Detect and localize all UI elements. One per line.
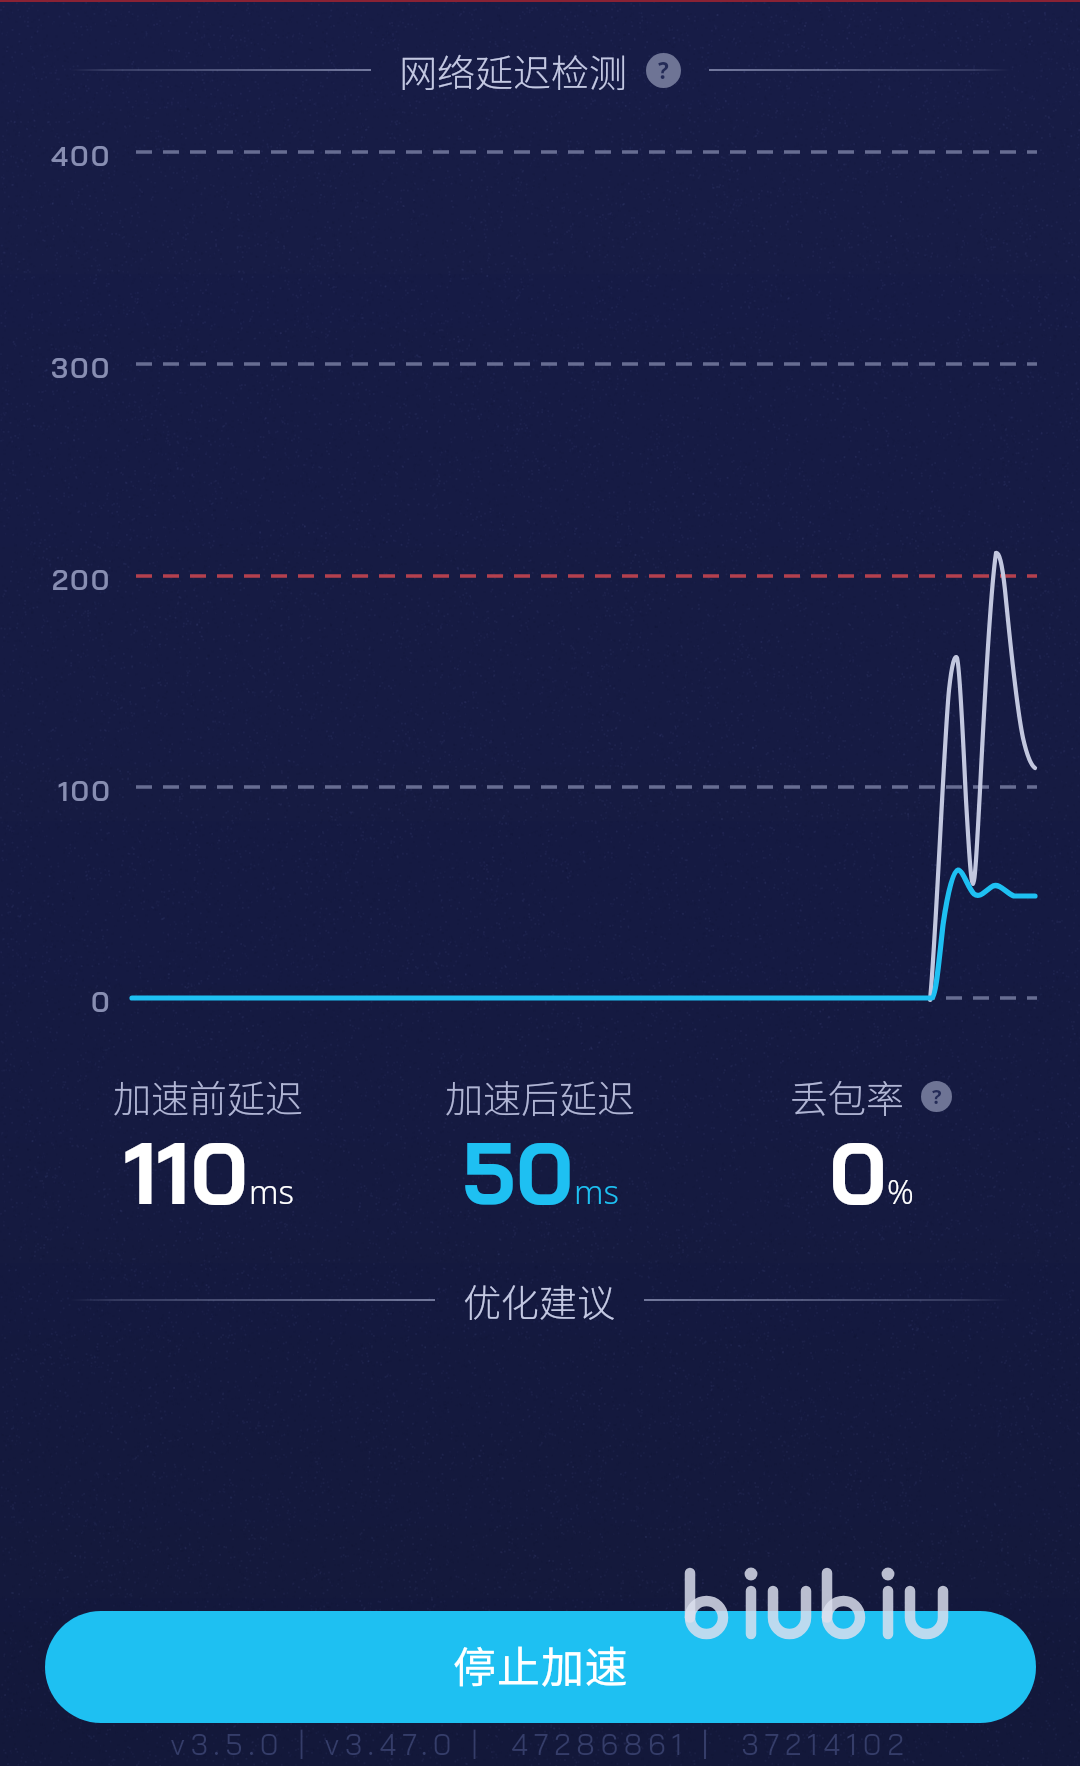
staticText: 50 [462,1118,574,1213]
staticText: % [887,1169,914,1214]
staticText: 400 [51,138,112,173]
staticText: 200 [52,562,112,597]
staticText: 丢包率 [790,1069,905,1124]
button[interactable]: 加速后延迟 [0,1069,1080,1219]
button[interactable]: 停止加速 [45,1611,1036,1723]
button[interactable]: 丢包率 [0,1069,1080,1219]
button[interactable]: Help [646,53,681,88]
button[interactable]: Help [921,1081,952,1112]
staticText: ms [574,1169,619,1214]
staticText: 110 [124,1118,249,1213]
staticText: 300 [51,350,112,385]
staticText: 0 [829,1118,887,1213]
staticText: 加速前延迟 [113,1069,304,1124]
staticText: 停止加速 [453,1633,629,1695]
staticText: 优化建议 [463,1273,616,1328]
staticText: 网络延迟检测 [399,43,628,98]
other: biubiu [684,1564,960,1652]
staticText: 加速后延迟 [445,1069,636,1124]
staticText: ? [932,1083,942,1110]
button[interactable]: 加速前延迟 [0,1069,1080,1219]
staticText: 0 [91,984,112,1019]
staticText: 100 [58,773,112,808]
staticText: ? [658,55,669,86]
staticText: v3.5.0 | v3.47.0 | 47286861 | 37214102 [170,1726,910,1762]
staticText: ms [249,1169,294,1214]
